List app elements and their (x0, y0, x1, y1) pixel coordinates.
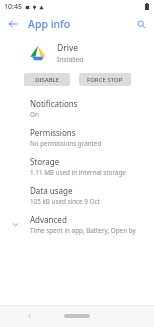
button[interactable]: Storage (0, 152, 154, 181)
button[interactable]: Permissions (0, 123, 154, 152)
button[interactable]: Search (132, 15, 150, 33)
button[interactable]: Data usage (0, 181, 154, 210)
staticText: FORCE STOP (87, 76, 123, 84)
button[interactable]: Drive (0, 40, 154, 66)
button[interactable]: Home (64, 314, 90, 318)
staticText: 1.11 MB used in internal storage (30, 168, 126, 177)
staticText: Drive (57, 42, 79, 54)
button[interactable]: Advanced (0, 210, 154, 239)
staticText: App info (28, 17, 71, 31)
staticText: DISABLE (35, 76, 60, 84)
button[interactable]: FORCE STOP (79, 73, 131, 86)
staticText: Advanced (30, 214, 67, 225)
staticText: 105 kB used since 9 Oct (30, 197, 100, 206)
staticText: 10:45 (4, 2, 22, 12)
staticText: Data usage (30, 185, 73, 196)
staticText: On (30, 110, 39, 119)
button[interactable]: DISABLE (24, 73, 70, 86)
staticText: No permissions granted (30, 139, 102, 148)
staticText: Notifications (30, 98, 78, 109)
staticText: Time spent in app, Battery, Open by defa… (30, 226, 148, 235)
button[interactable]: Back (4, 15, 22, 33)
staticText: Permissions (30, 127, 76, 138)
staticText: Installed (57, 55, 84, 64)
button[interactable]: Back (24, 310, 36, 322)
staticText: Storage (30, 156, 60, 167)
button[interactable]: Notifications (0, 94, 154, 123)
